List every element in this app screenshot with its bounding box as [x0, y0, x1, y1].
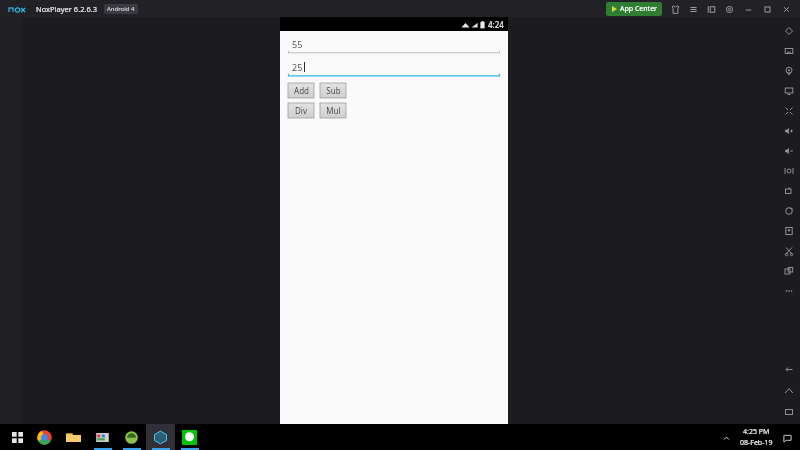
staticText: Sub	[326, 85, 341, 96]
button[interactable]: 25	[288, 60, 500, 78]
button[interactable]: 55	[288, 37, 500, 55]
button[interactable]: Close	[781, 4, 792, 15]
button[interactable]: Screen	[783, 85, 795, 97]
staticText: Mul	[326, 105, 341, 116]
button[interactable]: Shake	[783, 25, 795, 37]
button[interactable]: Shirt	[670, 4, 681, 15]
button[interactable]: Action center	[780, 431, 794, 445]
button[interactable]: Keyboard	[783, 45, 795, 57]
button[interactable]: LINE	[175, 424, 204, 450]
staticText: 4:25 PM	[743, 427, 770, 437]
button[interactable]: Minimize	[743, 4, 754, 15]
button[interactable]: Record	[783, 185, 795, 197]
staticText: 4:24	[488, 19, 504, 30]
button[interactable]: Android Studio	[117, 424, 146, 450]
button[interactable]: Recents	[783, 406, 795, 418]
button[interactable]: More	[783, 285, 795, 297]
button[interactable]: Editor	[88, 424, 117, 450]
button[interactable]: Home	[783, 385, 795, 397]
button[interactable]: Fullscreen	[783, 105, 795, 117]
staticText: Android 4	[107, 5, 135, 13]
button[interactable]: Mul	[320, 103, 346, 118]
button[interactable]: Chrome	[30, 424, 59, 450]
button[interactable]: 4:25 PM	[740, 427, 773, 448]
staticText: 55	[292, 38, 303, 50]
staticText: Add	[294, 85, 309, 96]
staticText: Div	[295, 105, 307, 116]
button[interactable]: Zoom	[783, 225, 795, 237]
button[interactable]: Volume up	[783, 125, 795, 137]
button[interactable]: Div	[288, 103, 314, 118]
button[interactable]: Multi window	[783, 265, 795, 277]
button[interactable]: File Explorer	[59, 424, 88, 450]
button[interactable]: Multi instance	[706, 4, 717, 15]
button[interactable]: Back	[783, 364, 795, 376]
staticText: NoxPlayer 6.2.6.3	[36, 4, 98, 14]
button[interactable]: Menu	[688, 4, 699, 15]
button[interactable]: Settings	[724, 4, 735, 15]
button[interactable]: Rotate	[783, 205, 795, 217]
button[interactable]: Maximize	[762, 4, 773, 15]
button[interactable]: Start	[4, 424, 30, 450]
staticText: 25	[292, 61, 303, 73]
button[interactable]: Sub	[320, 83, 346, 98]
staticText: App Center	[620, 4, 657, 14]
button[interactable]: Screenshot	[783, 165, 795, 177]
button[interactable]: Volume down	[783, 145, 795, 157]
button[interactable]: Add	[288, 83, 314, 98]
button[interactable]: App Center	[606, 2, 662, 16]
button[interactable]: NoxPlayer	[146, 424, 175, 450]
staticText: 08-Feb-19	[740, 438, 773, 448]
button[interactable]: Show hidden icons	[718, 430, 734, 446]
button[interactable]: Cut	[783, 245, 795, 257]
button[interactable]: Location	[783, 65, 795, 77]
